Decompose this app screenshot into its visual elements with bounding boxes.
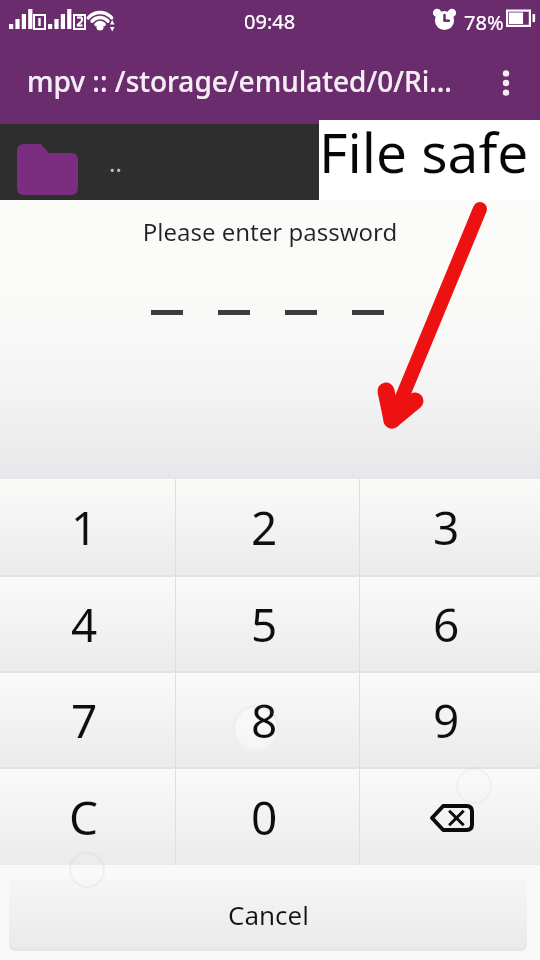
button[interactable]: 8 — [176, 673, 360, 767]
button[interactable]: 3 — [360, 479, 540, 575]
button[interactable]: 5 — [176, 577, 360, 671]
button[interactable]: More options — [482, 44, 540, 124]
button[interactable]: 6 — [360, 577, 540, 671]
staticText: .. — [109, 146, 122, 179]
staticText: 1 — [71, 496, 98, 559]
other: Backspace — [360, 769, 540, 865]
staticText: 78% — [464, 9, 504, 36]
staticText: C — [69, 786, 99, 849]
staticText: Please enter password — [0, 215, 540, 248]
staticText: 5 — [251, 593, 278, 656]
button[interactable]: 7 — [0, 673, 176, 767]
staticText: 6 — [433, 593, 460, 656]
button[interactable]: 9 — [360, 673, 540, 767]
button[interactable]: 4 — [0, 577, 176, 671]
button[interactable]: 2 — [176, 479, 360, 575]
staticText: 3 — [433, 496, 460, 559]
staticText: 9 — [433, 689, 460, 752]
button[interactable]: Cancel — [9, 879, 527, 949]
staticText: 2 — [251, 496, 278, 559]
staticText: 7 — [71, 689, 98, 752]
button[interactable]: 1 — [0, 479, 176, 575]
staticText: File safe — [319, 114, 529, 189]
staticText: mpv :: /storage/emulated/0/Ri… — [27, 62, 452, 100]
staticText: Cancel — [228, 897, 309, 932]
button[interactable]: Backspace — [360, 769, 540, 865]
staticText: 4 — [71, 593, 98, 656]
staticText: 0 — [251, 786, 278, 849]
staticText: 8 — [251, 689, 278, 752]
button[interactable]: C — [0, 769, 176, 865]
staticText: 09:48 — [244, 8, 296, 35]
button[interactable]: 0 — [176, 769, 360, 865]
